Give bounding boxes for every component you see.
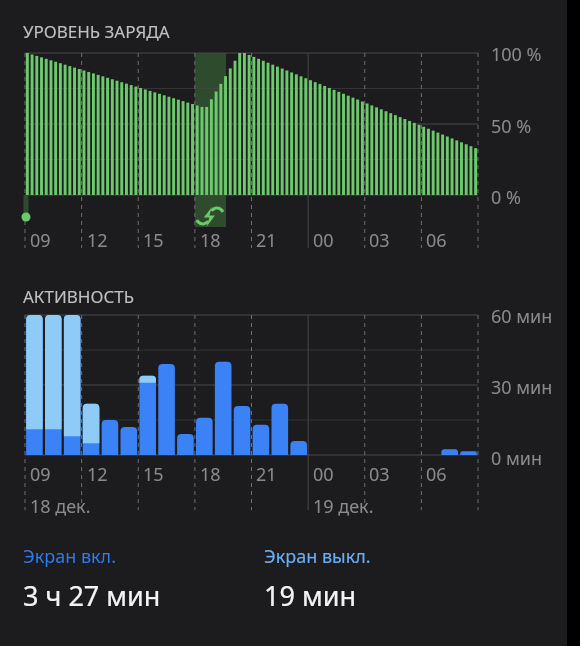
staticText: 12 (87, 462, 108, 487)
staticText: Экран вкл. (23, 544, 116, 569)
button[interactable] (0, 44, 567, 260)
button[interactable]: Экран выкл. (264, 544, 504, 614)
staticText: 09 (30, 462, 51, 487)
staticText: 06 (426, 462, 447, 487)
staticText: 21 (256, 462, 277, 487)
staticText: 19 мин (264, 577, 356, 614)
staticText: 50 % (491, 114, 532, 139)
staticText: УРОВЕНЬ ЗАРЯДА (23, 20, 170, 43)
button[interactable]: Экран вкл. (23, 544, 263, 614)
staticText: Экран выкл. (264, 544, 371, 569)
staticText: 30 мин (491, 375, 553, 400)
staticText: 60 мин (491, 304, 553, 329)
staticText: 0 % (491, 185, 521, 210)
staticText: 18 (200, 462, 221, 487)
staticText: 06 (426, 228, 447, 253)
staticText: 3 ч 27 мин (23, 577, 161, 614)
staticText: 09 (30, 228, 51, 253)
staticText: 0 мин (491, 446, 543, 471)
button[interactable] (0, 306, 567, 521)
staticText: 00 (313, 462, 334, 487)
staticText: АКТИВНОСТЬ (23, 285, 135, 308)
staticText: 21 (256, 228, 277, 253)
staticText: 00 (313, 228, 334, 253)
staticText: 03 (369, 462, 390, 487)
staticText: 18 (200, 228, 221, 253)
staticText: 18 дек. (30, 494, 91, 519)
staticText: 12 (87, 228, 108, 253)
staticText: 100 % (491, 42, 542, 67)
staticText: 15 (143, 462, 164, 487)
staticText: 15 (143, 228, 164, 253)
staticText: 03 (369, 228, 390, 253)
staticText: 19 дек. (313, 494, 374, 519)
